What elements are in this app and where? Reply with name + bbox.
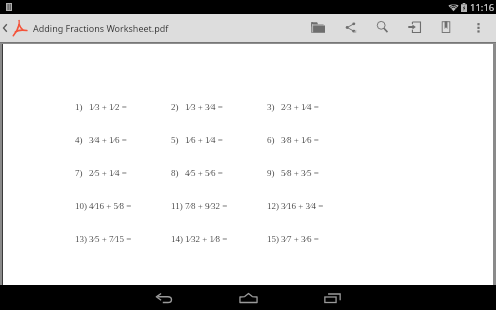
button[interactable]: Bookmark [430, 14, 462, 42]
staticText: 7⁄8 + 9⁄32 = [185, 201, 228, 211]
button[interactable]: Go to page [398, 14, 430, 42]
staticText: 1⁄3 + 3⁄4 = [185, 102, 223, 112]
button[interactable]: Recent apps [290, 285, 374, 310]
staticText: 11) [171, 201, 183, 211]
staticText: 1⁄3 + 1⁄2 = [89, 102, 127, 112]
staticText: 3⁄7 + 3⁄6 = [281, 234, 319, 244]
button[interactable]: More options [462, 14, 494, 42]
staticText: 14) [171, 234, 183, 244]
staticText: 15) [267, 234, 279, 244]
staticText: 12) [267, 201, 279, 211]
staticText: 2) [171, 102, 179, 112]
staticText: 3⁄8 + 1⁄6 = [281, 135, 319, 145]
staticText: 4⁄16 + 5⁄8 = [89, 201, 132, 211]
staticText: 4⁄5 + 5⁄6 = [185, 168, 223, 178]
staticText: 1⁄6 + 1⁄4 = [185, 135, 223, 145]
staticText: 1⁄32 + 1⁄8 = [185, 234, 228, 244]
staticText: 9) [267, 168, 275, 178]
staticText: 8) [171, 168, 179, 178]
button[interactable]: Home [206, 285, 290, 310]
staticText: 11:16 [470, 1, 495, 14]
button[interactable]: Search [366, 14, 398, 42]
button[interactable]: Open folder [302, 14, 334, 42]
staticText: 2⁄3 + 1⁄4 = [281, 102, 319, 112]
button[interactable]: Share [334, 14, 366, 42]
staticText: 3) [267, 102, 275, 112]
staticText: 3⁄16 + 3⁄4 = [281, 201, 324, 211]
staticText: 1) [75, 102, 83, 112]
button[interactable]: Back [122, 285, 206, 310]
staticText: 5) [171, 135, 179, 145]
staticText: 10) [75, 201, 87, 211]
staticText: Adding Fractions Worksheet.pdf [33, 22, 169, 34]
button[interactable]: Navigate up [0, 14, 9, 42]
staticText: 5⁄8 + 3⁄5 = [281, 168, 319, 178]
staticText: 2⁄5 + 1⁄4 = [89, 168, 127, 178]
staticText: 3⁄4 + 1⁄6 = [89, 135, 127, 145]
staticText: 4) [75, 135, 83, 145]
staticText: 13) [75, 234, 87, 244]
staticText: 7) [75, 168, 83, 178]
staticText: 3⁄5 + 7⁄15 = [89, 234, 132, 244]
staticText: 6) [267, 135, 275, 145]
